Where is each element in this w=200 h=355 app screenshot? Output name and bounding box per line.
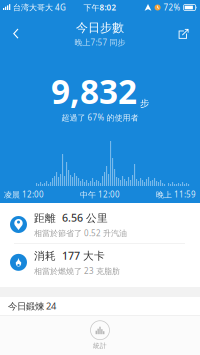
staticText: 消耗 177 大卡 [34, 248, 105, 263]
button[interactable]: 統計 [0, 316, 200, 355]
staticText: 凌晨 12:00 [4, 189, 44, 200]
staticText: 中午 12:00 [80, 189, 120, 200]
staticText: 台湾大哥大 [13, 3, 53, 12]
staticText: 9,832 [51, 69, 137, 113]
staticText: 相當於節省了 0.52 升汽油 [34, 228, 127, 238]
staticText: 晚上7:57 同步 [74, 37, 125, 48]
button[interactable]: 今日鍛煉 24 [0, 297, 200, 315]
staticText: 下午8:02 [83, 2, 116, 13]
staticText: 步 [140, 98, 149, 109]
staticText: 72% [164, 2, 181, 13]
staticText: 統計 [93, 342, 107, 350]
staticText: 今日步數 [76, 20, 124, 35]
staticText: 晚上 11:59 [156, 189, 196, 200]
staticText: 距離 6.56 公里 [34, 211, 108, 225]
staticText: 相當於燃燒了 23 克脂肪 [34, 266, 120, 276]
staticText: 超過了 67% 的使用者 [61, 112, 138, 123]
staticText: 4G [55, 2, 66, 13]
button[interactable]: Share [178, 21, 200, 47]
staticText: 今日鍛煉 24 [8, 300, 56, 312]
button[interactable]: Back [0, 21, 19, 47]
